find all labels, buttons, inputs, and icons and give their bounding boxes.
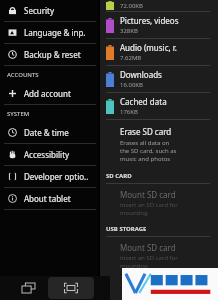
staticText: Mount SD card (120, 189, 176, 200)
button[interactable]: Audio (music, r. (100, 39, 218, 65)
staticText: 72.00KB (120, 2, 143, 10)
button[interactable]: Backup & reset (0, 44, 98, 65)
staticText: Mount SD card (120, 242, 176, 253)
staticText: Date & time (24, 127, 69, 138)
staticText: Add account (24, 88, 71, 99)
staticText: 328KB (120, 27, 138, 35)
staticText: Audio (music, r. (120, 42, 177, 53)
staticText: SYSTEM (7, 110, 30, 118)
staticText: insert an SD card for mounting (120, 201, 178, 217)
button[interactable]: Cached data (100, 93, 218, 119)
button[interactable]: Recents (14, 277, 42, 299)
button[interactable]: 72.00KB (100, 0, 218, 11)
staticText: Erase SD card (120, 126, 172, 137)
staticText: Security (24, 5, 55, 16)
button[interactable]: Language & inp. (0, 22, 98, 43)
button[interactable]: About tablet (0, 188, 98, 209)
staticText: 7.62MB (120, 54, 142, 62)
button[interactable]: Screenshot (48, 277, 94, 299)
button[interactable]: Downloads (100, 66, 218, 92)
staticText: About tablet (24, 193, 71, 204)
staticText: ACCOUNTS (7, 71, 39, 79)
staticText: Language & inp. (24, 27, 86, 38)
button[interactable]: Erase SD card (100, 120, 218, 168)
button[interactable]: Add account (0, 83, 98, 104)
staticText: 176KB (120, 108, 138, 116)
staticText: 16.00KB (120, 81, 143, 89)
button[interactable]: Developer optio.. (0, 166, 98, 187)
staticText: Accessibility (24, 149, 70, 160)
staticText: SD CARD (106, 172, 132, 180)
button[interactable]: Accessibility (0, 144, 98, 165)
staticText: Backup & reset (24, 49, 81, 60)
button[interactable]: Mount SD card (100, 237, 218, 274)
staticText: USB STORAGE (106, 225, 147, 233)
staticText: Developer optio.. (24, 171, 89, 182)
button[interactable]: Security (0, 0, 98, 21)
button[interactable]: Pictures, videos (100, 12, 218, 38)
button[interactable]: Mount SD card (100, 184, 218, 221)
staticText: Erases all data on the SD card, such as … (120, 139, 177, 163)
staticText: Pictures, videos (120, 15, 179, 26)
staticText: insert an SD card for mounting (120, 254, 178, 270)
staticText: Cached data (120, 96, 167, 107)
staticText: Downloads (120, 69, 162, 80)
button[interactable]: Date & time (0, 122, 98, 143)
